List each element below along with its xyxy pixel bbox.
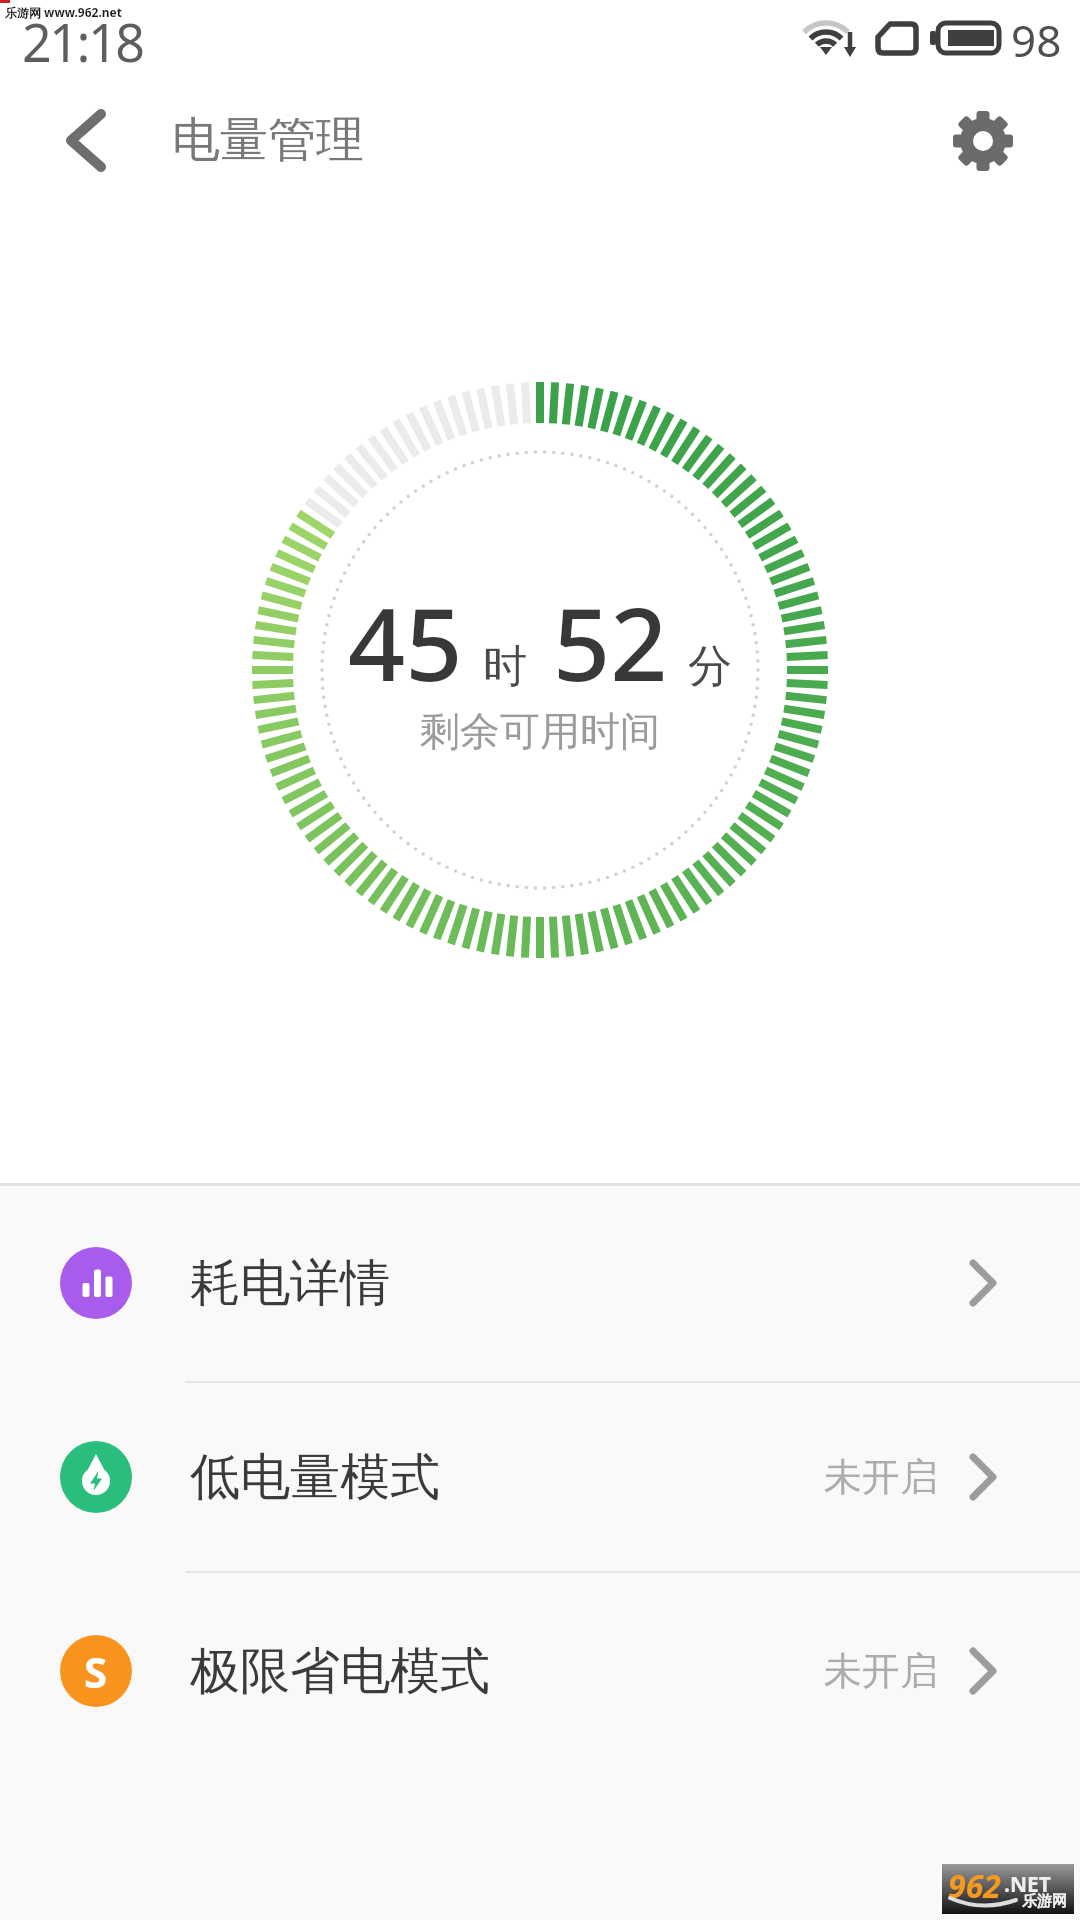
staticText: 52 bbox=[553, 574, 668, 710]
staticText: .NET bbox=[1004, 1870, 1051, 1899]
staticText: 未开启 bbox=[824, 1647, 938, 1695]
staticText: 乐游网 bbox=[1022, 1892, 1067, 1911]
button[interactable]: S bbox=[0, 1573, 1080, 1769]
button[interactable]: 耗电详情 bbox=[0, 1186, 1080, 1381]
staticText: 剩余可用时间 bbox=[420, 706, 660, 754]
staticText: 98 bbox=[1011, 10, 1062, 66]
staticText: 耗电详情 bbox=[190, 1252, 390, 1315]
staticText: 时 bbox=[483, 639, 527, 694]
staticText: 未开启 bbox=[824, 1453, 938, 1501]
button[interactable] bbox=[945, 103, 1021, 179]
staticText: 电量管理 bbox=[172, 110, 364, 170]
staticText: 962 bbox=[948, 1864, 1001, 1908]
staticText: S bbox=[84, 1643, 108, 1700]
button[interactable] bbox=[48, 100, 128, 180]
staticText: 分 bbox=[688, 639, 732, 694]
button[interactable]: 低电量模式 bbox=[0, 1383, 1080, 1571]
staticText: 极限省电模式 bbox=[190, 1640, 490, 1703]
staticText: 45 bbox=[348, 574, 463, 710]
staticText: 低电量模式 bbox=[190, 1446, 440, 1509]
staticText: 乐游网 www.962.net bbox=[5, 4, 122, 20]
staticText: 21:18 bbox=[22, 6, 143, 66]
